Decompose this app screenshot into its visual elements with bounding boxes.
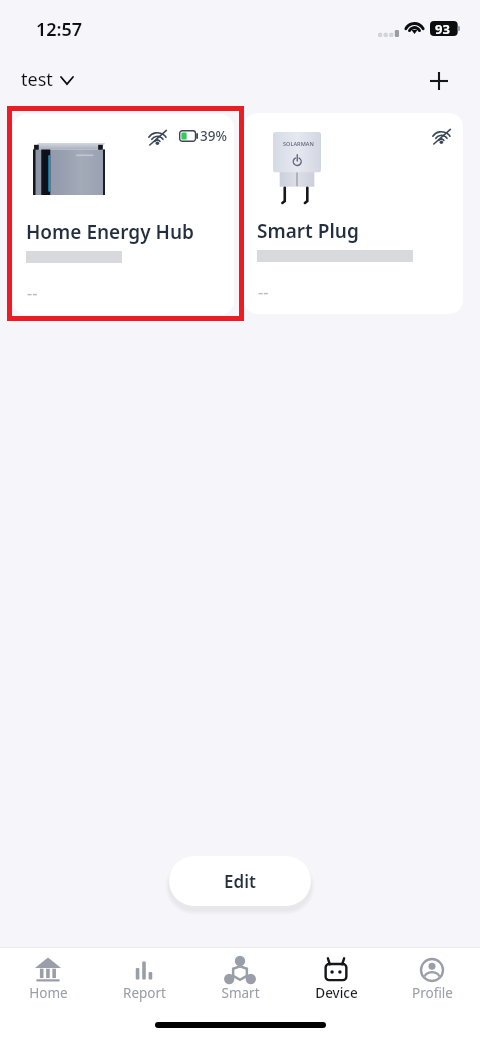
- staticText: test: [21, 67, 53, 92]
- button[interactable]: Edit: [169, 856, 311, 906]
- button[interactable]: Smart: [192, 948, 288, 1005]
- staticText: Profile: [412, 984, 453, 1002]
- button[interactable]: Add device: [423, 65, 455, 97]
- button[interactable]: test: [21, 67, 73, 92]
- staticText: Device: [315, 984, 358, 1002]
- staticText: Smart Plug: [257, 218, 359, 244]
- button[interactable]: Home: [0, 948, 96, 1005]
- button[interactable]: Report: [96, 948, 192, 1005]
- staticText: Edit: [224, 870, 256, 893]
- button[interactable]: Device: [288, 948, 384, 1005]
- button[interactable]: SOLARMAN: [244, 113, 463, 314]
- staticText: 39%: [200, 127, 227, 145]
- staticText: Report: [123, 984, 166, 1002]
- staticText: --: [258, 281, 269, 303]
- button[interactable]: 39%: [13, 114, 234, 315]
- staticText: Home: [29, 984, 68, 1002]
- staticText: 12:57: [36, 17, 83, 42]
- staticText: SOLARMAN: [283, 140, 314, 148]
- staticText: Smart: [221, 984, 260, 1002]
- staticText: --: [27, 282, 38, 304]
- staticText: Home Energy Hub: [26, 219, 194, 245]
- button[interactable]: Profile: [384, 948, 480, 1005]
- staticText: 93: [435, 20, 450, 38]
